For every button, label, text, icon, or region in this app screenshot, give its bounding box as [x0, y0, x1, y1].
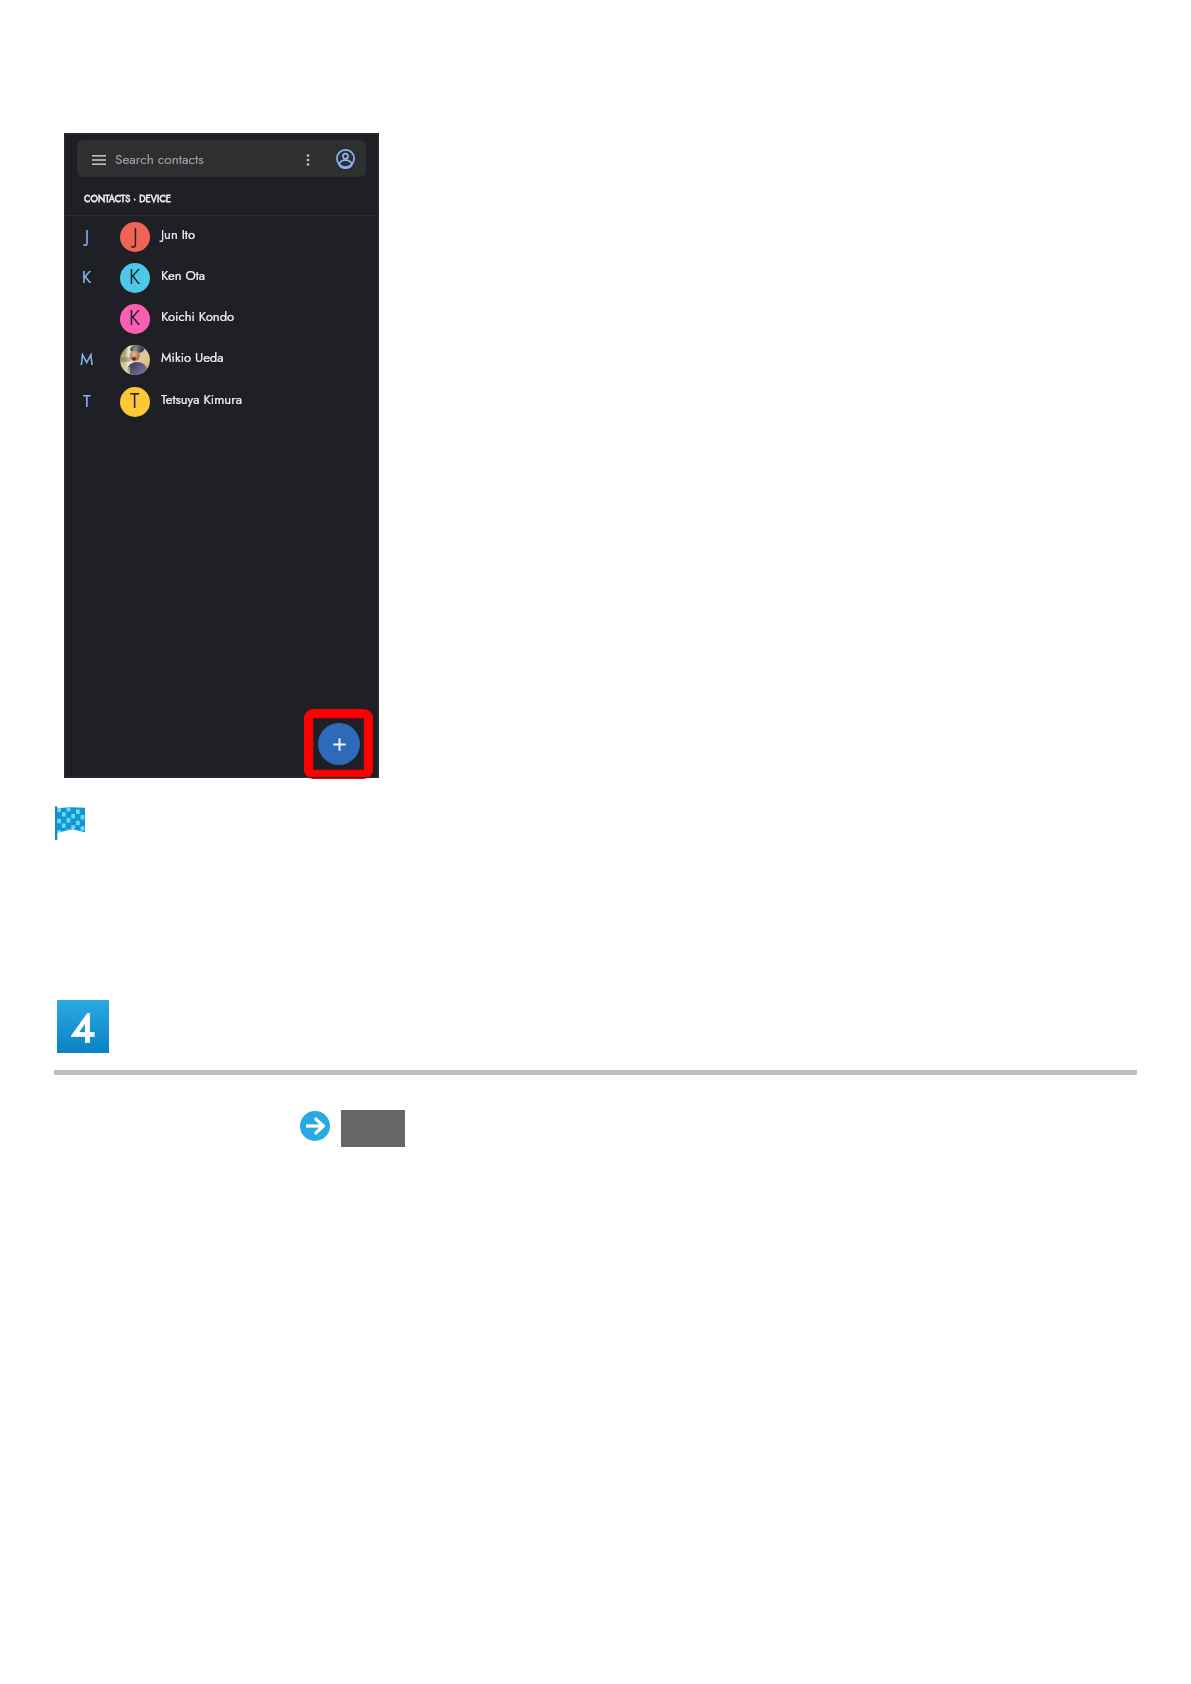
staticText: 4 [71, 998, 95, 1051]
staticText: K [129, 263, 141, 292]
staticText: CONTACTS · DEVICE [84, 192, 172, 205]
button[interactable]: Search contacts [77, 140, 366, 177]
staticText: Koichi Kondo [161, 307, 235, 326]
button[interactable]: Open navigation drawer [88, 149, 109, 170]
button[interactable]: K [64, 257, 379, 298]
staticText: Jun Ito [161, 225, 196, 244]
button[interactable]: J [64, 216, 379, 257]
button[interactable]: M [64, 339, 379, 380]
staticText: T [83, 389, 91, 413]
staticText: J [85, 224, 89, 248]
button[interactable]: Account [334, 147, 357, 170]
staticText: Ken Ota [161, 266, 206, 285]
staticText: K [82, 265, 92, 289]
staticText: Mikio Ueda [161, 348, 224, 367]
staticText: T [130, 387, 140, 416]
staticText: K [129, 304, 141, 333]
staticText: M [80, 347, 94, 371]
button[interactable]: More options [299, 151, 317, 169]
button[interactable]: K [64, 298, 379, 339]
staticText: Search contacts [115, 150, 204, 170]
staticText: J [133, 222, 138, 251]
button[interactable]: Create contact [318, 723, 360, 765]
button[interactable]: T [64, 381, 379, 422]
staticText: Tetsuya Kimura [161, 390, 242, 409]
